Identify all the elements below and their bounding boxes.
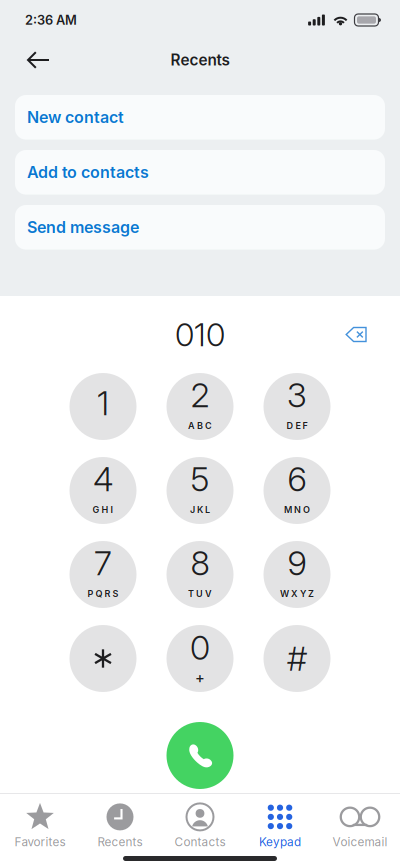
staticText: 2	[190, 375, 209, 415]
staticText: Keypad	[259, 835, 301, 849]
button[interactable]: Recents	[80, 801, 160, 851]
staticText: T U V	[188, 588, 212, 599]
button[interactable]: 0	[166, 625, 233, 692]
staticText: 6	[287, 459, 306, 499]
staticText: Voicemail	[332, 835, 387, 849]
button[interactable]: Voicemail	[320, 801, 400, 851]
button[interactable]: 7	[69, 541, 136, 608]
button[interactable]: Contacts	[160, 801, 240, 851]
button[interactable]: Call	[166, 722, 233, 789]
staticText: Recents	[97, 835, 142, 849]
staticText: +	[195, 669, 205, 686]
button[interactable]: Keypad	[240, 801, 320, 851]
button[interactable]: Send message	[15, 205, 385, 250]
staticText: #	[287, 638, 307, 679]
button[interactable]: 5	[166, 457, 233, 524]
staticText: M N O	[284, 504, 310, 515]
staticText: New contact	[27, 108, 124, 127]
staticText: 9	[287, 543, 306, 583]
staticText: Add to contacts	[27, 163, 149, 182]
staticText: 5	[190, 459, 209, 499]
staticText: D E F	[286, 420, 307, 431]
staticText: 7	[94, 543, 112, 583]
button[interactable]: #	[263, 625, 330, 692]
staticText: Favorites	[14, 835, 65, 849]
button[interactable]: Delete	[336, 317, 376, 351]
button[interactable]: 9	[263, 541, 330, 608]
staticText: J K L	[190, 504, 210, 515]
button[interactable]: 4	[69, 457, 136, 524]
staticText: 3	[287, 375, 307, 415]
staticText: 010	[175, 315, 225, 354]
staticText: 1	[97, 383, 109, 423]
staticText: G H I	[92, 504, 113, 515]
button[interactable]: 6	[263, 457, 330, 524]
button[interactable]: Favorites	[0, 801, 80, 851]
button[interactable]: 3	[263, 373, 330, 440]
button[interactable]: 8	[166, 541, 233, 608]
staticText: A B C	[188, 420, 212, 431]
staticText: Recents	[170, 51, 229, 69]
button[interactable]: Back	[20, 41, 56, 78]
staticText: 0	[190, 627, 210, 668]
button[interactable]	[69, 625, 136, 692]
button[interactable]: New contact	[15, 95, 385, 140]
staticText: W X Y Z	[280, 588, 314, 599]
staticText: Send message	[27, 218, 139, 237]
staticText: 8	[190, 543, 209, 583]
staticText: Contacts	[174, 835, 225, 849]
staticText: 4	[93, 459, 113, 499]
button[interactable]: Add to contacts	[15, 150, 385, 195]
staticText: P Q R S	[87, 588, 118, 599]
button[interactable]: 2	[166, 373, 233, 440]
button[interactable]: 1	[69, 373, 136, 440]
staticText: 2:36 AM	[25, 12, 77, 28]
